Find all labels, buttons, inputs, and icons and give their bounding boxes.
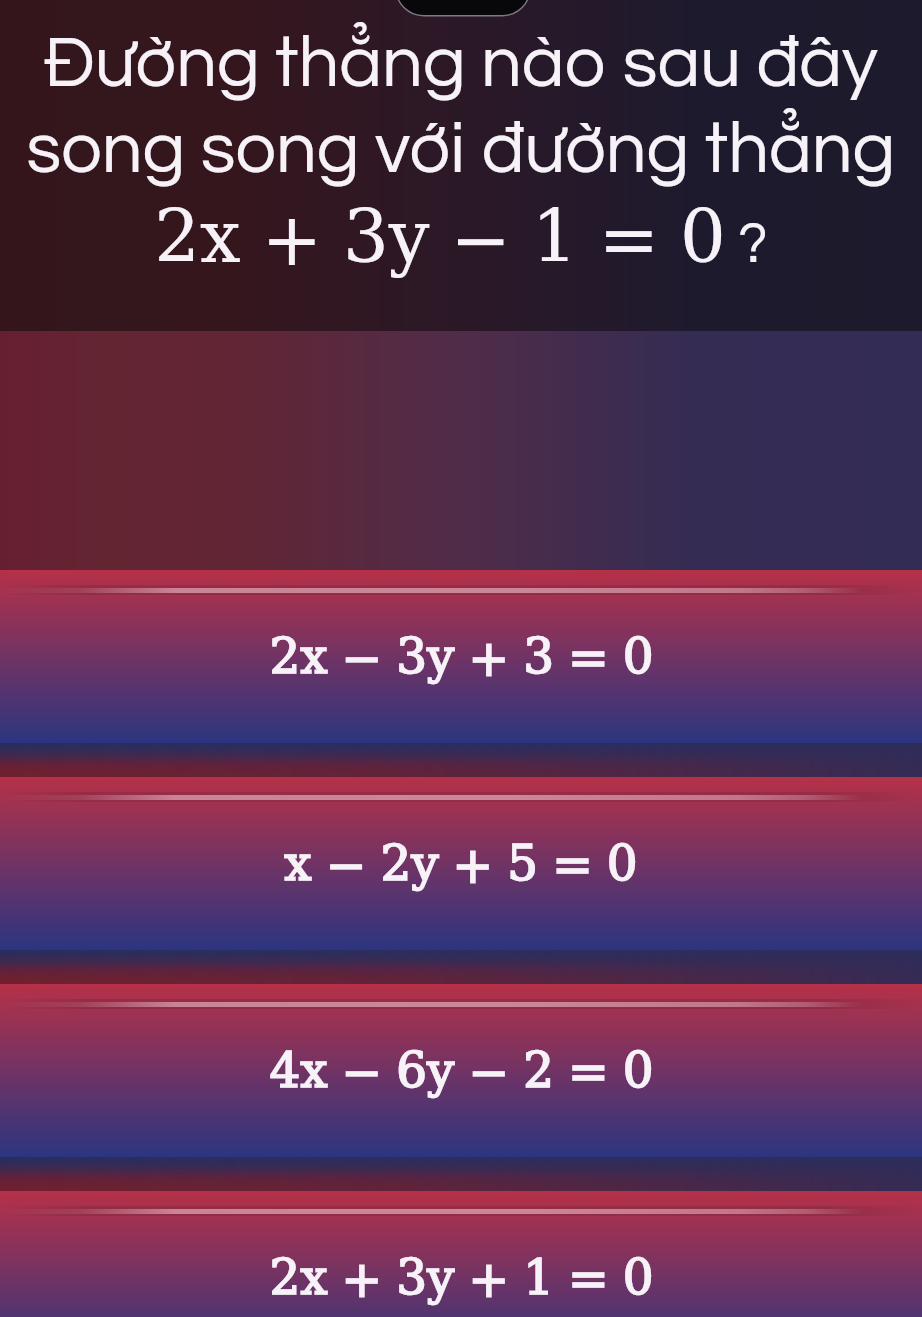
staticText: 2x − 3y + 3 = 0 — [269, 635, 654, 683]
staticText: 4x − 6y − 2 = 0 — [269, 1049, 654, 1097]
staticText: 2x + 3y + 1 = 0 — [269, 1256, 654, 1304]
staticText: 2x + 3y − 1 = 0 ? — [0, 205, 922, 277]
button[interactable]: 4x − 6y − 2 = 0 — [0, 984, 922, 1157]
button[interactable]: x − 2y + 5 = 0 — [0, 777, 922, 950]
button[interactable]: 2x − 3y + 3 = 0 — [0, 570, 922, 743]
staticText: Đường thẳng nào sau đây song song với đư… — [8, 27, 914, 188]
button[interactable]: 2x + 3y + 1 = 0 — [0, 1191, 922, 1317]
staticText: x − 2y + 5 = 0 — [284, 842, 638, 890]
